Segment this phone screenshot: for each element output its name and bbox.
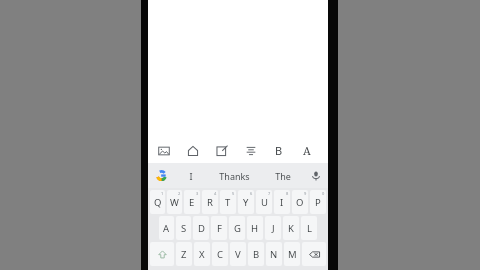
staticText: Thanks — [219, 170, 250, 182]
staticText: I — [280, 196, 284, 209]
button[interactable]: D — [193, 216, 209, 240]
staticText: Q — [154, 196, 162, 209]
button[interactable]: O — [292, 190, 308, 214]
button[interactable]: A — [159, 216, 174, 240]
staticText: C — [217, 248, 224, 261]
staticText: X — [199, 248, 205, 261]
button[interactable]: E — [184, 190, 200, 214]
button[interactable]: Insert image — [155, 142, 172, 159]
button[interactable]: B — [270, 142, 287, 159]
staticText: E — [189, 196, 195, 209]
button[interactable]: Shift — [150, 242, 174, 266]
button[interactable]: Text format — [242, 142, 259, 159]
staticText: B — [253, 248, 260, 261]
button[interactable]: Q — [150, 190, 165, 214]
button[interactable]: W — [167, 190, 182, 214]
button[interactable]: The — [261, 163, 304, 188]
staticText: The — [275, 170, 291, 182]
staticText: 8 — [286, 191, 289, 196]
staticText: U — [261, 196, 268, 209]
staticText: S — [181, 222, 187, 235]
staticText: O — [296, 196, 304, 209]
staticText: A — [303, 143, 311, 158]
staticText: H — [251, 222, 259, 235]
button[interactable]: I — [274, 190, 290, 214]
button[interactable]: X — [194, 242, 210, 266]
button[interactable]: I — [174, 163, 208, 188]
staticText: 2 — [178, 191, 181, 196]
button[interactable]: Stickers — [184, 142, 201, 159]
staticText: 0 — [322, 191, 325, 196]
button[interactable]: Checklist — [213, 142, 230, 159]
staticText: 4 — [214, 191, 217, 196]
staticText: 6 — [250, 191, 253, 196]
staticText: Z — [181, 248, 187, 261]
button[interactable]: S — [176, 216, 191, 240]
button[interactable]: T — [220, 190, 236, 214]
button[interactable]: Thanks — [208, 163, 261, 188]
staticText: B — [275, 143, 283, 158]
button[interactable]: V — [230, 242, 246, 266]
staticText: M — [288, 248, 297, 261]
button[interactable]: Backspace — [302, 242, 326, 266]
staticText: F — [217, 222, 222, 235]
staticText: W — [170, 196, 179, 209]
button[interactable]: M — [284, 242, 300, 266]
staticText: V — [235, 248, 241, 261]
staticText: 1 — [161, 191, 164, 196]
button[interactable]: L — [301, 216, 317, 240]
staticText: Y — [243, 196, 249, 209]
button[interactable]: A — [298, 142, 315, 159]
button[interactable]: Google search — [148, 163, 174, 188]
staticText: A — [163, 222, 170, 235]
staticText: G — [234, 222, 241, 235]
staticText: T — [225, 196, 231, 209]
button[interactable]: Y — [238, 190, 254, 214]
button[interactable]: N — [266, 242, 282, 266]
button[interactable]: K — [283, 216, 299, 240]
button[interactable]: R — [202, 190, 218, 214]
button[interactable]: J — [265, 216, 281, 240]
staticText: L — [307, 222, 312, 235]
staticText: N — [270, 248, 278, 261]
staticText: P — [315, 196, 321, 209]
button[interactable]: B — [248, 242, 264, 266]
staticText: J — [272, 222, 275, 235]
button[interactable]: C — [212, 242, 228, 266]
staticText: K — [288, 222, 294, 235]
staticText: I — [189, 170, 193, 182]
staticText: 7 — [268, 191, 271, 196]
staticText: R — [207, 196, 213, 209]
button[interactable]: H — [247, 216, 263, 240]
button[interactable]: Z — [176, 242, 192, 266]
button[interactable]: U — [256, 190, 272, 214]
staticText: 5 — [232, 191, 235, 196]
button[interactable]: P — [310, 190, 326, 214]
button[interactable]: Voice input — [304, 163, 328, 188]
staticText: 9 — [304, 191, 307, 196]
button[interactable]: G — [229, 216, 245, 240]
staticText: D — [198, 222, 205, 235]
button[interactable]: F — [211, 216, 227, 240]
staticText: 3 — [196, 191, 199, 196]
